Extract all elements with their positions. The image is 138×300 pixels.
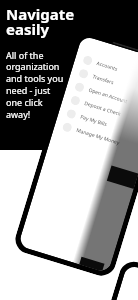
staticText: Accounts <box>96 60 119 73</box>
button[interactable]: Deposit a Check <box>62 90 138 131</box>
button[interactable]: Accounts <box>74 50 138 90</box>
staticText: Transfers <box>92 73 115 86</box>
staticText: Manage My Money <box>75 127 120 147</box>
button[interactable]: Transfers <box>70 63 138 104</box>
staticText: Open an Account <box>88 87 129 105</box>
staticText: Pay My Bills <box>79 113 108 128</box>
button[interactable]: Open an Account <box>66 76 138 117</box>
staticText: Navigate easily <box>6 4 75 39</box>
button[interactable]: Pay My Bills <box>57 103 138 144</box>
staticText: All of the organization and tools you ne… <box>6 49 64 121</box>
staticText: Deposit a Check <box>83 100 122 118</box>
button[interactable]: Manage My Money <box>53 116 138 157</box>
